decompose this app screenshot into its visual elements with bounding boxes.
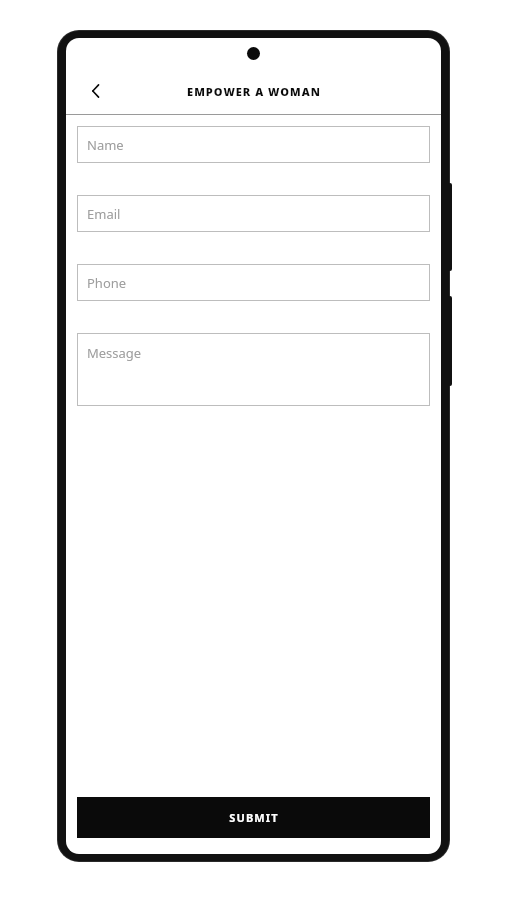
staticText: Message bbox=[87, 344, 142, 362]
button[interactable]: Email bbox=[77, 195, 430, 232]
staticText: Name bbox=[87, 136, 124, 154]
staticText: Email bbox=[87, 205, 121, 223]
staticText: EMPOWER A WOMAN bbox=[187, 84, 321, 99]
button[interactable]: Phone bbox=[77, 264, 430, 301]
button[interactable]: Name bbox=[77, 126, 430, 163]
button[interactable]: Message bbox=[77, 333, 430, 406]
staticText: Phone bbox=[87, 274, 127, 292]
button[interactable]: SUBMIT bbox=[77, 797, 430, 838]
staticText: SUBMIT bbox=[229, 810, 279, 825]
button[interactable]: Back bbox=[74, 69, 118, 113]
